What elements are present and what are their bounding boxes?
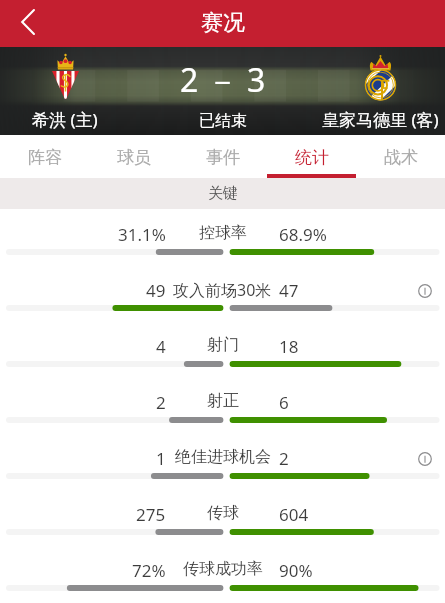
button[interactable]: 4 [0,321,445,377]
staticText: 68.9% [279,223,327,246]
staticText: 18 [279,335,299,358]
button[interactable]: 31.1% [0,209,445,265]
staticText: 604 [279,503,309,526]
staticText: 275 [136,503,166,526]
staticText: 射正 [207,391,239,411]
staticText: 6 [279,391,289,414]
button[interactable]: 球员 [89,135,178,178]
staticText: 传球 [207,503,239,523]
staticText: 阵容 [28,147,62,168]
button[interactable]: 阵容 [0,135,89,178]
staticText: 47 [279,279,299,302]
staticText: 72% [132,559,166,582]
staticText: 统计 [295,147,329,168]
staticText: 射门 [207,335,239,355]
staticText: 控球率 [199,223,247,243]
staticText: 战术 [384,147,418,168]
staticText: 皇家马德里 (客) [322,108,439,131]
button[interactable]: 统计 [267,135,356,178]
staticText: 球员 [117,147,151,168]
staticText: 2 [279,447,289,470]
button[interactable]: 275 [0,489,445,545]
staticText: 1 [156,447,166,470]
staticText: 已结束 [199,111,247,131]
staticText: 49 [146,279,166,302]
button[interactable]: 49 [0,265,445,321]
button[interactable]: Info [411,277,439,305]
staticText: 事件 [206,147,240,168]
button[interactable]: 72% [0,545,445,601]
staticText: 希洪 (主) [32,108,98,131]
staticText: 4 [156,335,166,358]
button[interactable]: 战术 [356,135,445,178]
button[interactable]: Info [411,445,439,473]
button[interactable]: 1 [0,433,445,489]
button[interactable]: 事件 [178,135,267,178]
staticText: 31.1% [118,223,166,246]
staticText: 90% [279,559,313,582]
staticText: 绝佳进球机会 [175,447,271,467]
button[interactable]: 2 [0,377,445,433]
staticText: 传球成功率 [183,559,263,579]
staticText: 2 － 3 [180,58,266,102]
staticText: 赛况 [201,9,245,37]
staticText: 2 [156,391,166,414]
staticText: 关键 [208,184,238,203]
staticText: 攻入前场30米 [173,279,272,301]
button[interactable]: Back [0,0,50,47]
